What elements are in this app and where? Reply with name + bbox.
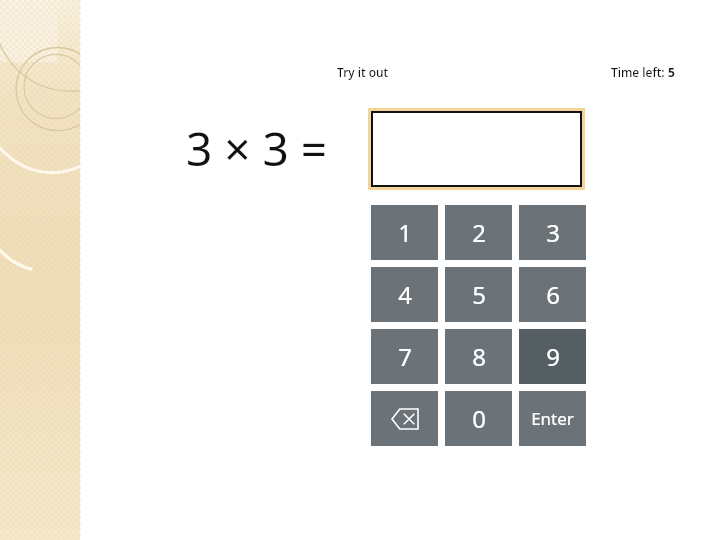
button[interactable]: 0	[445, 391, 512, 446]
staticText: 8	[472, 340, 486, 373]
staticText: 1	[398, 216, 412, 249]
button[interactable]: 7	[371, 329, 438, 384]
staticText: 7	[398, 340, 412, 373]
button[interactable]: Enter	[519, 391, 586, 446]
button[interactable]: 8	[445, 329, 512, 384]
staticText: 2	[472, 216, 486, 249]
staticText: 5	[472, 278, 486, 311]
staticText: 5	[668, 64, 675, 80]
staticText: 4	[398, 278, 412, 311]
button[interactable]: 3	[519, 205, 586, 260]
staticText: 6	[546, 278, 560, 311]
staticText: 9	[546, 340, 560, 373]
staticText: 3	[546, 216, 560, 249]
button[interactable]: 5	[445, 267, 512, 322]
button[interactable]: 6	[519, 267, 586, 322]
button[interactable]: 4	[371, 267, 438, 322]
staticText: 3 × 3 =	[186, 117, 328, 180]
button[interactable]: Backspace	[371, 391, 438, 446]
staticText: Enter	[531, 407, 574, 430]
staticText: Time left:	[611, 64, 668, 80]
staticText: Try it out	[337, 64, 389, 80]
staticText: 0	[472, 402, 486, 435]
button[interactable]: 9	[519, 329, 586, 384]
button[interactable]: 1	[371, 205, 438, 260]
button[interactable]: 2	[445, 205, 512, 260]
